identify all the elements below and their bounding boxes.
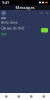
button[interactable]: Tab bbox=[0, 93, 12, 100]
button[interactable]: Tab bbox=[25, 93, 37, 100]
button[interactable]: Tab bbox=[12, 93, 25, 100]
button[interactable]: Tab bbox=[37, 93, 50, 100]
staticText: Sure bbox=[1, 32, 7, 36]
staticText: Hello there bbox=[1, 21, 18, 24]
staticText: Messages bbox=[15, 5, 34, 10]
staticText: Can you do this? bbox=[1, 27, 24, 30]
staticText: 9:41 bbox=[2, 0, 9, 5]
